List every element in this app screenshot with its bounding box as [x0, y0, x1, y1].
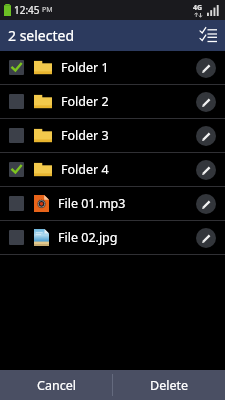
button[interactable]: Folder 4 — [0, 153, 225, 186]
staticText: Folder 3 — [61, 127, 191, 144]
staticText: 4G — [193, 3, 203, 13]
staticText: Folder 1 — [61, 59, 191, 76]
button[interactable]: Rename File 02.jpg — [191, 223, 221, 253]
staticText: File 02.jpg — [58, 229, 191, 246]
staticText: Delete — [150, 377, 189, 394]
button[interactable]: File 01.mp3 — [0, 187, 225, 220]
staticText: 12:45 — [14, 3, 40, 17]
button[interactable]: Rename Folder 4 — [191, 155, 221, 185]
button[interactable]: Rename Folder 3 — [191, 121, 221, 151]
button[interactable]: Rename File 01.mp3 — [191, 189, 221, 219]
staticText: 2 selected — [8, 26, 75, 45]
button[interactable]: Cancel — [0, 370, 112, 400]
staticText: Folder 4 — [61, 161, 191, 178]
button[interactable]: Folder 3 — [0, 119, 225, 152]
button[interactable]: File 02.jpg — [0, 221, 225, 254]
button[interactable]: Folder 1 — [0, 51, 225, 84]
staticText: Cancel — [37, 377, 76, 394]
staticText: Folder 2 — [61, 93, 191, 110]
button[interactable]: Folder 2 — [0, 85, 225, 118]
button[interactable]: Select all — [191, 20, 225, 51]
button[interactable]: Rename Folder 1 — [191, 53, 221, 83]
staticText: PM — [42, 5, 53, 15]
button[interactable]: Rename Folder 2 — [191, 87, 221, 117]
button[interactable]: Delete — [113, 370, 225, 400]
staticText: File 01.mp3 — [58, 195, 191, 212]
